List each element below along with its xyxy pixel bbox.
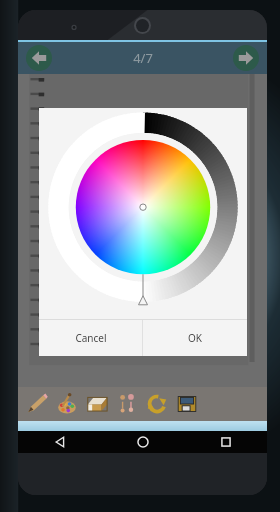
button[interactable]: Previous page [26, 45, 52, 71]
button[interactable]: Next page [233, 45, 259, 71]
button[interactable]: Recents [184, 431, 267, 453]
button[interactable]: Pencil [24, 391, 50, 417]
button[interactable]: Brush size [114, 391, 140, 417]
button[interactable]: Undo [144, 391, 170, 417]
button[interactable]: Cancel [39, 320, 142, 356]
button[interactable]: Back [18, 431, 101, 453]
staticText: Cancel [75, 331, 107, 345]
button[interactable]: Eraser [84, 391, 110, 417]
staticText: OK [188, 331, 202, 345]
button[interactable]: Save [174, 391, 200, 417]
button[interactable]: OK [143, 320, 247, 356]
button[interactable]: Palette [54, 391, 80, 417]
button[interactable]: Home [101, 431, 184, 453]
staticText: 4/7 [133, 49, 153, 67]
